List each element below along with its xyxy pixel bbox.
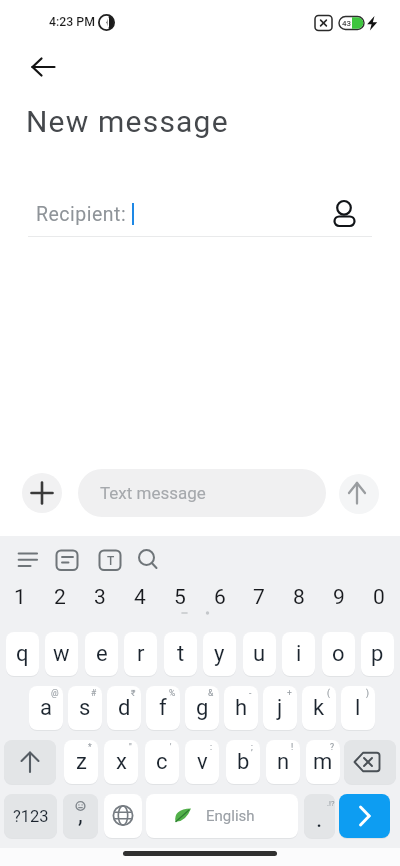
staticText: New message	[26, 104, 229, 139]
button[interactable]: s	[68, 686, 102, 730]
button[interactable]: T	[90, 540, 130, 580]
staticText: )	[366, 688, 369, 698]
button[interactable]: m	[306, 740, 340, 784]
button[interactable]: a	[29, 686, 63, 730]
button[interactable]	[48, 540, 88, 580]
button[interactable]: r	[124, 632, 157, 676]
staticText: 6	[214, 585, 226, 610]
staticText: k	[313, 695, 325, 721]
staticText: 1	[14, 585, 26, 610]
button[interactable]: p	[361, 632, 394, 676]
staticText: i	[296, 641, 302, 667]
button[interactable]: o	[322, 632, 355, 676]
staticText: @	[51, 688, 59, 698]
staticText: z	[76, 749, 87, 775]
button[interactable]	[22, 473, 62, 513]
button[interactable]: 8	[281, 582, 317, 612]
button[interactable]	[4, 740, 56, 784]
button[interactable]: j	[263, 686, 297, 730]
button[interactable]: .	[304, 794, 335, 838]
button[interactable]: t	[164, 632, 197, 676]
button[interactable]: c	[145, 740, 179, 784]
staticText: %	[169, 688, 176, 698]
button[interactable]: b	[226, 740, 260, 784]
staticText: u	[253, 641, 266, 667]
staticText: +	[287, 688, 292, 698]
staticText: a	[40, 695, 52, 721]
staticText: ;	[251, 742, 253, 752]
button[interactable]	[130, 540, 170, 580]
button[interactable]: 0	[361, 582, 397, 612]
button[interactable]: 5	[162, 582, 198, 612]
button[interactable]: k	[302, 686, 336, 730]
staticText: 3	[94, 585, 106, 610]
staticText: n	[277, 749, 290, 775]
button[interactable]: z	[64, 740, 98, 784]
button[interactable]	[20, 55, 68, 81]
staticText: ₹	[131, 688, 136, 698]
button[interactable]	[104, 794, 142, 838]
staticText: 43	[342, 19, 352, 28]
staticText: x	[116, 749, 127, 775]
button[interactable]: i	[282, 632, 315, 676]
button[interactable]: 9	[321, 582, 357, 612]
staticText: r	[137, 641, 145, 667]
button[interactable]: u	[243, 632, 276, 676]
button[interactable]	[344, 740, 396, 784]
staticText: v	[197, 749, 208, 775]
button[interactable]: 4	[122, 582, 158, 612]
button[interactable]	[339, 794, 390, 838]
staticText: ?	[330, 742, 335, 752]
staticText: '	[170, 742, 172, 752]
button[interactable]	[339, 474, 379, 514]
button[interactable]: g	[185, 686, 219, 730]
staticText: T	[107, 554, 115, 568]
staticText: #	[91, 688, 97, 698]
button[interactable]: w	[45, 632, 78, 676]
staticText: .	[316, 805, 323, 833]
staticText: m	[313, 749, 333, 775]
staticText: s	[79, 695, 91, 721]
staticText: j	[277, 695, 283, 721]
staticText: English	[206, 807, 255, 825]
staticText: "	[129, 742, 132, 752]
staticText: ?123	[13, 807, 49, 826]
staticText: o	[332, 641, 345, 667]
button[interactable]: ?123	[4, 794, 57, 838]
button[interactable]: d	[107, 686, 141, 730]
button[interactable]: English	[146, 794, 298, 838]
button[interactable]: 3	[82, 582, 118, 612]
button[interactable]: 6	[202, 582, 238, 612]
button[interactable]: v	[185, 740, 219, 784]
button[interactable]: y	[203, 632, 236, 676]
staticText: 4:23 PM	[49, 15, 95, 29]
button[interactable]: q	[6, 632, 39, 676]
staticText: Recipient:	[36, 203, 127, 226]
staticText: c	[156, 749, 168, 775]
button[interactable]	[8, 540, 48, 580]
staticText: ,	[78, 801, 83, 829]
button[interactable]: l	[341, 686, 375, 730]
staticText: t	[177, 641, 185, 667]
staticText: d	[118, 695, 131, 721]
button[interactable]: 2	[42, 582, 78, 612]
staticText: q	[16, 641, 29, 667]
button[interactable]: ,	[63, 794, 98, 838]
staticText: y	[214, 641, 225, 667]
staticText: (	[327, 688, 330, 698]
staticText: &	[208, 688, 214, 698]
button[interactable]: x	[104, 740, 138, 784]
button[interactable]: n	[266, 740, 300, 784]
button[interactable]: h	[224, 686, 258, 730]
button[interactable]	[78, 469, 326, 517]
staticText: b	[237, 749, 250, 775]
staticText: 5	[174, 585, 186, 610]
staticText: .!?	[327, 799, 335, 808]
button[interactable]: 7	[241, 582, 277, 612]
staticText: !	[291, 742, 294, 752]
button[interactable]	[326, 194, 364, 232]
button[interactable]: 1	[2, 582, 38, 612]
button[interactable]: f	[146, 686, 180, 730]
staticText: 8	[293, 585, 305, 610]
button[interactable]: e	[85, 632, 118, 676]
